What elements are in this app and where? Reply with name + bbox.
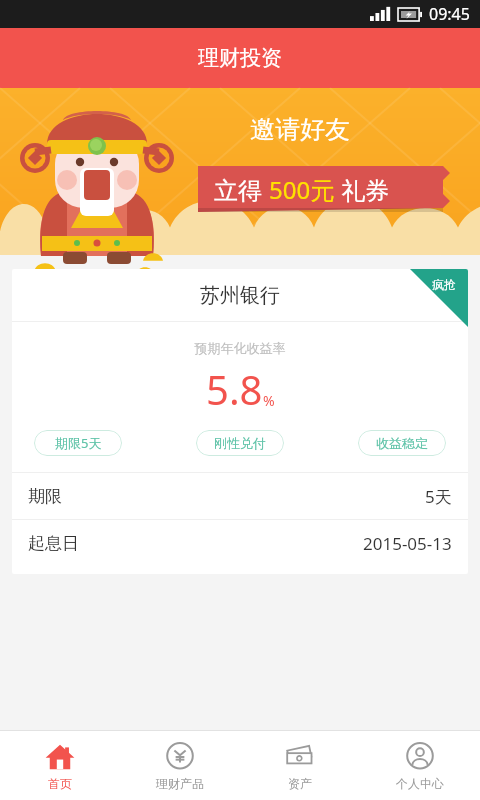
button[interactable]: 苏州银行	[12, 269, 468, 574]
button[interactable]: 期限	[28, 473, 452, 519]
staticText: 刚性兑付	[214, 435, 266, 451]
staticText: 理财投资	[198, 45, 282, 71]
staticText: 2015-05-13	[363, 532, 452, 555]
staticText: 个人中心	[396, 776, 444, 791]
staticText: %	[263, 391, 275, 410]
staticText: 5天	[425, 485, 452, 508]
button[interactable]: 起息日	[28, 520, 452, 566]
button[interactable]: 刚性兑付	[196, 430, 284, 456]
staticText: 500元	[269, 173, 335, 206]
button[interactable]: 期限5天	[34, 430, 122, 456]
staticText: 理财产品	[156, 776, 204, 791]
staticText: 5.8	[206, 362, 263, 416]
staticText: 苏州银行	[200, 283, 280, 308]
button[interactable]: 首页	[0, 731, 120, 800]
button[interactable]: 资产	[240, 731, 360, 800]
staticText: 首页	[48, 776, 72, 791]
button[interactable]: 收益稳定	[358, 430, 446, 456]
staticText: 礼券	[335, 173, 390, 206]
button[interactable]: 个人中心	[360, 731, 480, 800]
staticText: 疯抢	[432, 277, 456, 292]
staticText: 邀请好友	[250, 114, 350, 145]
staticText: 09:45	[429, 3, 470, 25]
staticText: 预期年化收益率	[12, 340, 468, 356]
button[interactable]: 理财产品	[120, 731, 240, 800]
staticText: 资产	[288, 776, 312, 791]
staticText: 期限	[28, 486, 62, 507]
staticText: 期限5天	[55, 434, 102, 452]
staticText: 起息日	[28, 533, 79, 554]
staticText: 收益稳定	[376, 435, 428, 451]
staticText: 立得	[214, 173, 269, 206]
